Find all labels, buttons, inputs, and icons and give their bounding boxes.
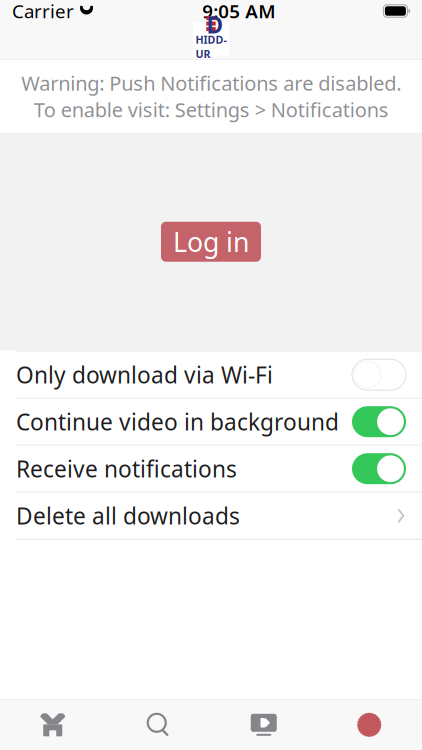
- staticText: Only download via Wi-Fi: [16, 360, 273, 390]
- button[interactable]: Home: [0, 700, 105, 750]
- staticText: Delete all downloads: [16, 501, 240, 531]
- button[interactable]: Log in: [161, 222, 261, 262]
- staticText: Continue video in background: [16, 407, 339, 437]
- staticText: Receive notifications: [16, 454, 237, 484]
- button[interactable]: Search: [105, 700, 211, 750]
- button[interactable]: Only download via Wi-Fi: [0, 352, 422, 398]
- button[interactable]: Settings: [316, 700, 422, 750]
- staticText: Carrier: [12, 0, 74, 23]
- staticText: Warning: Push Notifications are disabled…: [21, 70, 401, 123]
- button[interactable]: Delete all downloads: [0, 493, 422, 539]
- button[interactable]: Continue video in background: [0, 399, 422, 445]
- staticText: HIDDUR: [195, 33, 226, 61]
- staticText: 9:05 AM: [202, 0, 275, 23]
- button[interactable]: Videos: [211, 700, 316, 750]
- staticText: Log in: [173, 224, 249, 259]
- button[interactable]: Receive notifications: [0, 446, 422, 492]
- staticText: D: [206, 9, 223, 40]
